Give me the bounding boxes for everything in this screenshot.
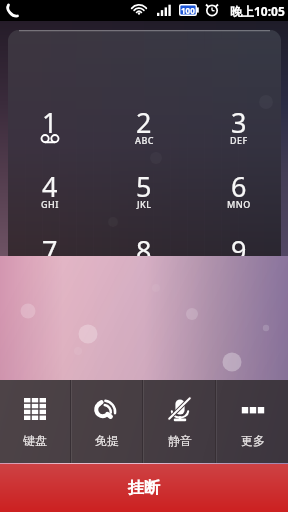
staticText: 100 xyxy=(181,5,195,16)
staticText: 挂断 xyxy=(128,478,160,498)
staticText: GHI xyxy=(41,198,59,210)
staticText: JKL xyxy=(137,198,152,210)
button[interactable]: 免提 xyxy=(72,380,142,463)
staticText: 7 xyxy=(42,232,58,256)
staticText: 8 xyxy=(136,232,152,256)
staticText: 4 xyxy=(42,168,58,198)
button[interactable] xyxy=(106,156,182,218)
staticText: 1 xyxy=(42,104,58,134)
staticText: DEF xyxy=(230,134,248,146)
button[interactable]: 静音 xyxy=(144,380,215,463)
staticText: 5 xyxy=(136,168,152,198)
button[interactable] xyxy=(106,92,182,154)
staticText: 2 xyxy=(136,104,152,134)
staticText: 更多 xyxy=(241,433,265,448)
button[interactable] xyxy=(201,156,277,218)
staticText: 免提 xyxy=(95,433,119,448)
button[interactable] xyxy=(12,220,88,256)
button[interactable]: 更多 xyxy=(217,380,288,463)
staticText: 6 xyxy=(231,168,247,198)
staticText: 3 xyxy=(231,104,247,134)
staticText: 晚上10:05 xyxy=(230,3,285,19)
staticText: MNO xyxy=(227,198,251,210)
button[interactable] xyxy=(201,92,277,154)
button[interactable] xyxy=(201,220,277,256)
staticText: 键盘 xyxy=(23,433,47,448)
staticText: ABC xyxy=(135,134,154,146)
button[interactable] xyxy=(106,220,182,256)
staticText: 静音 xyxy=(168,433,192,448)
button[interactable]: 键盘 xyxy=(0,380,70,463)
button[interactable]: 挂断 xyxy=(0,464,288,512)
button[interactable] xyxy=(12,156,88,218)
button[interactable] xyxy=(12,92,88,154)
staticText: 9 xyxy=(231,232,247,256)
